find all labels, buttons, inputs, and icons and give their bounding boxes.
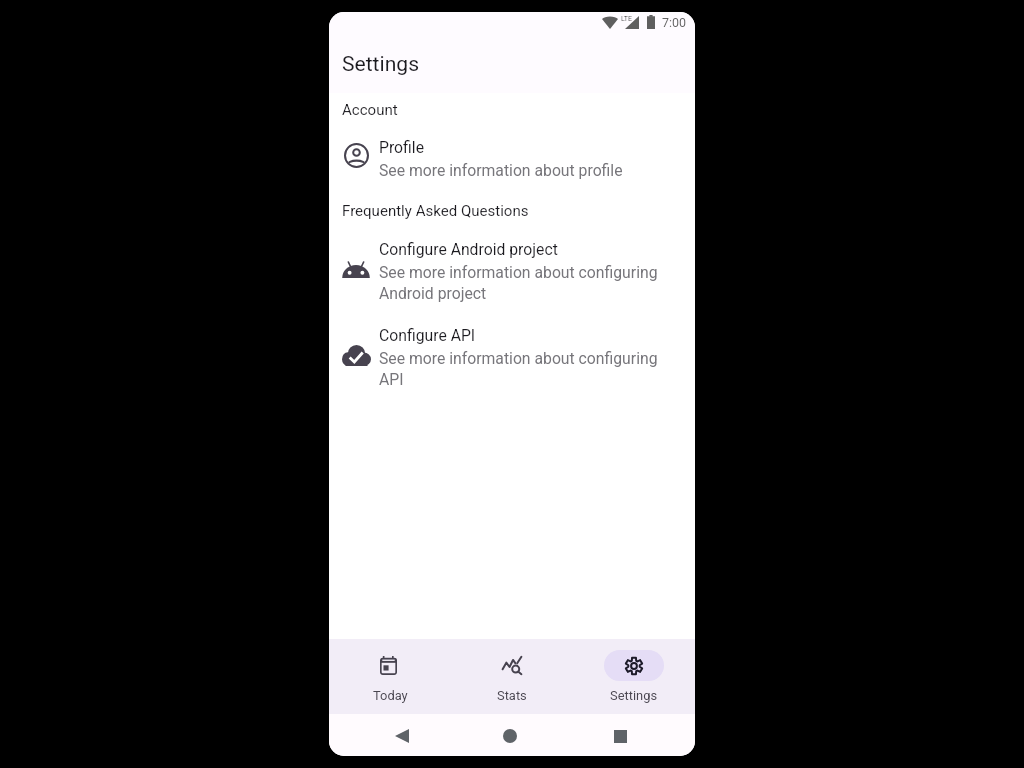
button[interactable]: Home [495,721,525,751]
staticText: Configure Android project [379,240,558,258]
staticText: Stats [497,688,527,703]
staticText: See more information about configuring A… [379,349,675,390]
staticText: Frequently Asked Questions [342,202,529,220]
button[interactable]: Profile [329,129,695,182]
staticText: Profile [379,138,425,156]
button[interactable]: Stats [451,639,573,714]
staticText: Settings [342,51,420,76]
staticText: See more information about profile [379,161,623,180]
staticText: Settings [610,688,658,703]
staticText: Configure API [379,326,476,344]
button[interactable]: Configure API [329,317,695,393]
staticText: See more information about configuring A… [379,263,675,304]
staticText: Today [373,688,408,703]
staticText: Account [342,101,398,119]
button[interactable]: Back [387,721,417,751]
button[interactable]: Today [329,639,451,714]
button[interactable]: Configure Android project [329,231,695,307]
button[interactable]: Recent apps [605,721,635,751]
staticText: LTE [621,15,632,23]
button[interactable]: Settings [573,639,695,714]
staticText: 7:00 [662,15,687,30]
